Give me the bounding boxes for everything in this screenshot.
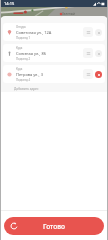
staticText: Откуда	[16, 25, 26, 29]
button[interactable]: Откуда	[3, 23, 105, 41]
staticText: Подъезд 1	[16, 36, 31, 40]
staticText: 14:15	[4, 1, 15, 6]
button[interactable]: Куда	[3, 65, 105, 83]
staticText: Подъезд 4	[16, 78, 31, 82]
other: Повторить	[11, 223, 17, 229]
button[interactable]: Удалить	[95, 29, 102, 36]
staticText: Подъезд 2	[16, 57, 31, 61]
button[interactable]: Добавить адрес	[14, 85, 108, 92]
button[interactable]: Переместить	[83, 27, 93, 37]
button[interactable]: Удалить	[95, 71, 102, 78]
button[interactable]: Удалить	[95, 50, 102, 57]
staticText: Петрова ул., 3	[16, 72, 43, 77]
staticText: Готово	[43, 222, 65, 231]
staticText: Зеленый	[62, 12, 75, 16]
staticText: Союзная ул., 86	[16, 51, 47, 56]
button[interactable]: Переместить	[83, 48, 93, 58]
staticText: Куда	[16, 67, 23, 71]
button[interactable]: Куда	[3, 44, 105, 62]
staticText: Куда	[16, 46, 23, 50]
staticText: Добавить адрес	[14, 87, 39, 91]
button[interactable]: Переместить	[83, 69, 93, 79]
button[interactable]: Готово	[4, 217, 104, 235]
staticText: Советская ул., 12А	[16, 30, 52, 35]
